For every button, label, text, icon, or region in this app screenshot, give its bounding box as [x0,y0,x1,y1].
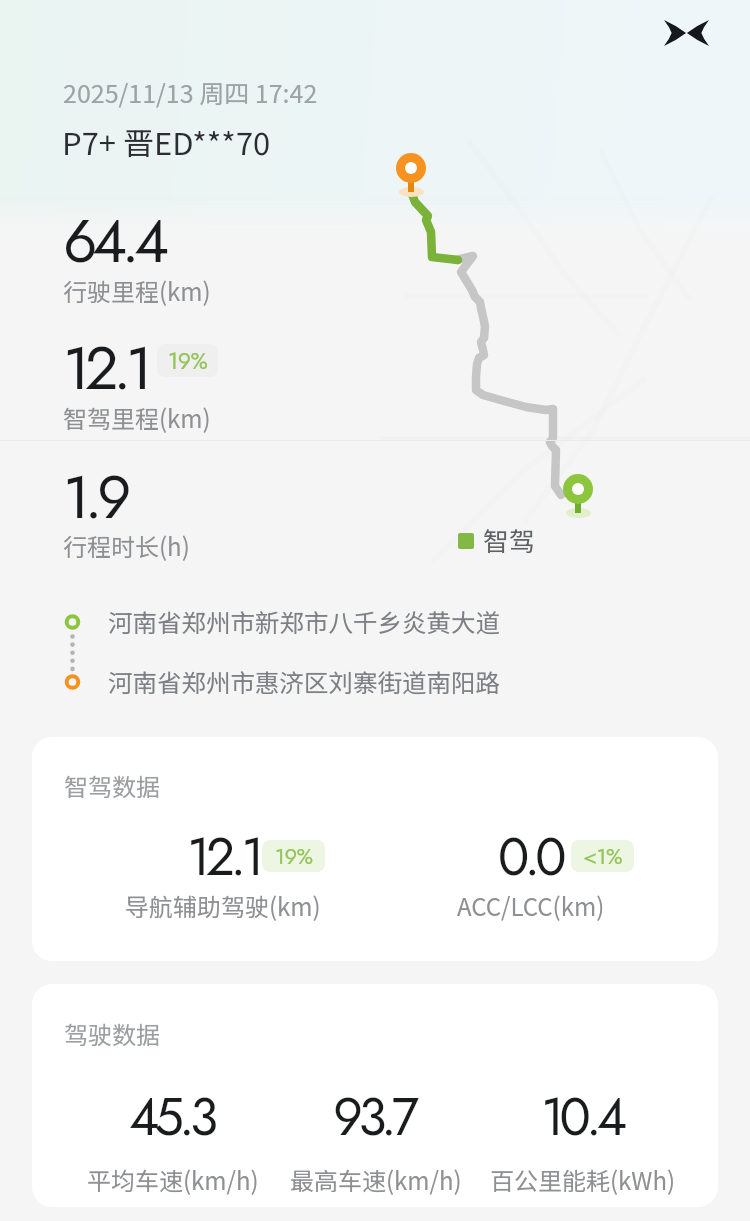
staticText: 19% [275,840,313,872]
staticText: 2025/11/13 周四 17:42 [63,74,318,110]
staticText: 河南省郑州市惠济区刘寨街道南阳路 [108,664,500,699]
staticText: 12.1 [187,819,260,894]
staticText: 平均车速(km/h) [87,1162,259,1197]
staticText: 智驾 [483,521,536,559]
staticText: 智驾数据 [64,768,160,803]
staticText: 驾驶数据 [64,1016,160,1051]
staticText: 93.7 [333,1079,415,1154]
button[interactable]: 驾驶数据 [32,984,718,1207]
staticText: 智驾里程(km) [63,400,211,435]
staticText: <1% [583,840,623,872]
staticText: 百公里能耗(kWh) [490,1162,676,1197]
staticText: 行驶里程(km) [63,273,211,308]
button[interactable]: 河南省郑州市新郑市八千乡炎黄大道 [0,598,750,710]
button[interactable]: XPeng logo [644,6,728,60]
staticText: 最高车速(km/h) [290,1162,462,1197]
staticText: 19% [168,344,208,377]
staticText: 0.0 [498,819,562,894]
staticText: ACC/LCC(km) [457,888,605,923]
staticText: 12.1 [63,325,148,412]
staticText: 10.4 [541,1079,623,1154]
button[interactable]: 智驾数据 [32,737,718,961]
staticText: 河南省郑州市新郑市八千乡炎黄大道 [108,604,500,639]
staticText: P7+ 晋ED***70 [62,119,271,164]
staticText: 行程时长(h) [63,528,190,563]
staticText: 1.9 [63,454,127,541]
staticText: 45.3 [129,1079,214,1154]
staticText: 64.4 [63,198,164,285]
staticText: 导航辅助驾驶(km) [125,888,321,923]
